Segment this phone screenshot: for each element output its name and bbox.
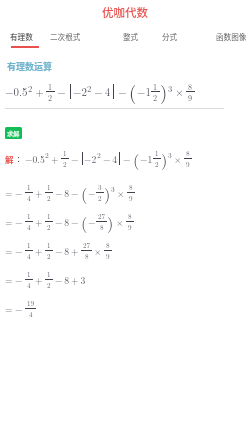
staticText: = — [5, 186, 15, 200]
staticText: 1 — [153, 81, 158, 92]
staticText: − 8 − — [53, 215, 81, 229]
staticText: − — [55, 84, 68, 99]
staticText: 2 — [155, 159, 159, 169]
staticText: 求解 — [7, 129, 20, 138]
staticText: − 8 + 3 — [53, 273, 86, 287]
staticText: 1 — [48, 81, 53, 92]
staticText: 9 — [186, 159, 190, 169]
staticText: 2 — [97, 150, 101, 161]
staticText: 27 — [83, 240, 91, 250]
staticText: 优咖代数 — [102, 4, 148, 21]
staticText: −0.5 — [25, 152, 45, 166]
staticText: + — [33, 84, 46, 99]
staticText: 3 — [168, 150, 172, 161]
staticText: 解 — [5, 153, 14, 165]
button[interactable] — [42, 24, 97, 50]
staticText: 8 — [100, 222, 104, 232]
staticText: −1 — [140, 152, 153, 166]
staticText: ) — [107, 210, 114, 233]
staticText: + — [33, 244, 45, 258]
staticText: 1 — [27, 211, 31, 221]
staticText: −1 — [137, 84, 151, 99]
staticText: − 8 + — [53, 244, 81, 258]
staticText: − — [15, 186, 25, 200]
staticText: ) — [104, 181, 111, 204]
staticText: − — [88, 215, 96, 229]
staticText: − — [116, 84, 129, 99]
button[interactable] — [200, 24, 250, 50]
staticText: − 8 − — [53, 186, 81, 200]
staticText: × — [92, 244, 104, 258]
staticText: = — [5, 302, 15, 316]
staticText: 9 — [129, 193, 133, 203]
staticText: − 4 — [92, 84, 111, 99]
staticText: = — [5, 244, 15, 258]
staticText: + — [33, 186, 45, 200]
staticText: 2 — [28, 82, 33, 94]
staticText: ( — [129, 78, 137, 105]
staticText: − 4 — [101, 152, 118, 166]
staticText: − — [15, 244, 25, 258]
staticText: 8 — [85, 251, 89, 261]
staticText: −2 — [73, 84, 87, 99]
staticText: 2 — [47, 251, 51, 261]
staticText: 4 — [27, 193, 31, 203]
staticText: 8 — [128, 211, 132, 221]
staticText: 19 — [27, 298, 35, 308]
staticText: = — [5, 215, 15, 229]
staticText: 4 — [27, 251, 31, 261]
staticText: 8 — [129, 182, 133, 192]
staticText: 2 — [98, 193, 102, 203]
staticText: 分式 — [162, 31, 178, 42]
staticText: 2 — [87, 82, 92, 94]
staticText: ( — [81, 210, 88, 233]
staticText: − — [69, 152, 81, 166]
staticText: × — [173, 84, 186, 99]
staticText: − — [15, 215, 25, 229]
staticText: + — [49, 152, 61, 166]
staticText: = — [5, 273, 15, 287]
staticText: 1 — [27, 269, 31, 279]
staticText: − — [121, 152, 133, 166]
staticText: 有理数 — [10, 31, 33, 42]
staticText: ( — [133, 147, 140, 170]
staticText: − — [15, 273, 25, 287]
staticText: 2 — [48, 92, 53, 103]
staticText: 8 — [186, 148, 190, 158]
staticText: 8 — [188, 81, 193, 92]
staticText: 1 — [155, 148, 159, 158]
staticText: ： — [14, 153, 24, 165]
button[interactable] — [97, 24, 150, 50]
staticText: 1 — [47, 240, 51, 250]
button[interactable]: 求解 — [5, 127, 22, 139]
staticText: + — [33, 215, 45, 229]
staticText: −0.5 — [5, 84, 28, 99]
staticText: 9 — [128, 222, 132, 232]
staticText: 1 — [47, 182, 51, 192]
staticText: 3 — [168, 82, 173, 94]
staticText: 2 — [45, 150, 49, 161]
staticText: 有理数运算 — [7, 60, 53, 73]
staticText: 4 — [29, 309, 33, 319]
staticText: −2 — [84, 152, 97, 166]
staticText: 1 — [27, 182, 31, 192]
staticText: 2 — [153, 92, 158, 103]
button[interactable] — [0, 24, 42, 50]
staticText: 9 — [106, 251, 110, 261]
staticText: × — [172, 152, 184, 166]
staticText: 整式 — [123, 31, 139, 42]
staticText: × — [114, 215, 126, 229]
staticText: 4 — [27, 280, 31, 290]
staticText: × — [115, 186, 127, 200]
staticText: ) — [160, 78, 168, 105]
staticText: 27 — [98, 211, 106, 221]
button[interactable] — [150, 24, 200, 50]
staticText: ) — [161, 147, 168, 170]
staticText: 4 — [27, 222, 31, 232]
staticText: 二次根式 — [50, 31, 81, 42]
staticText: 3 — [111, 184, 115, 195]
staticText: 1 — [47, 269, 51, 279]
staticText: 9 — [188, 92, 193, 103]
staticText: 3 — [98, 182, 102, 192]
staticText: + — [33, 273, 45, 287]
